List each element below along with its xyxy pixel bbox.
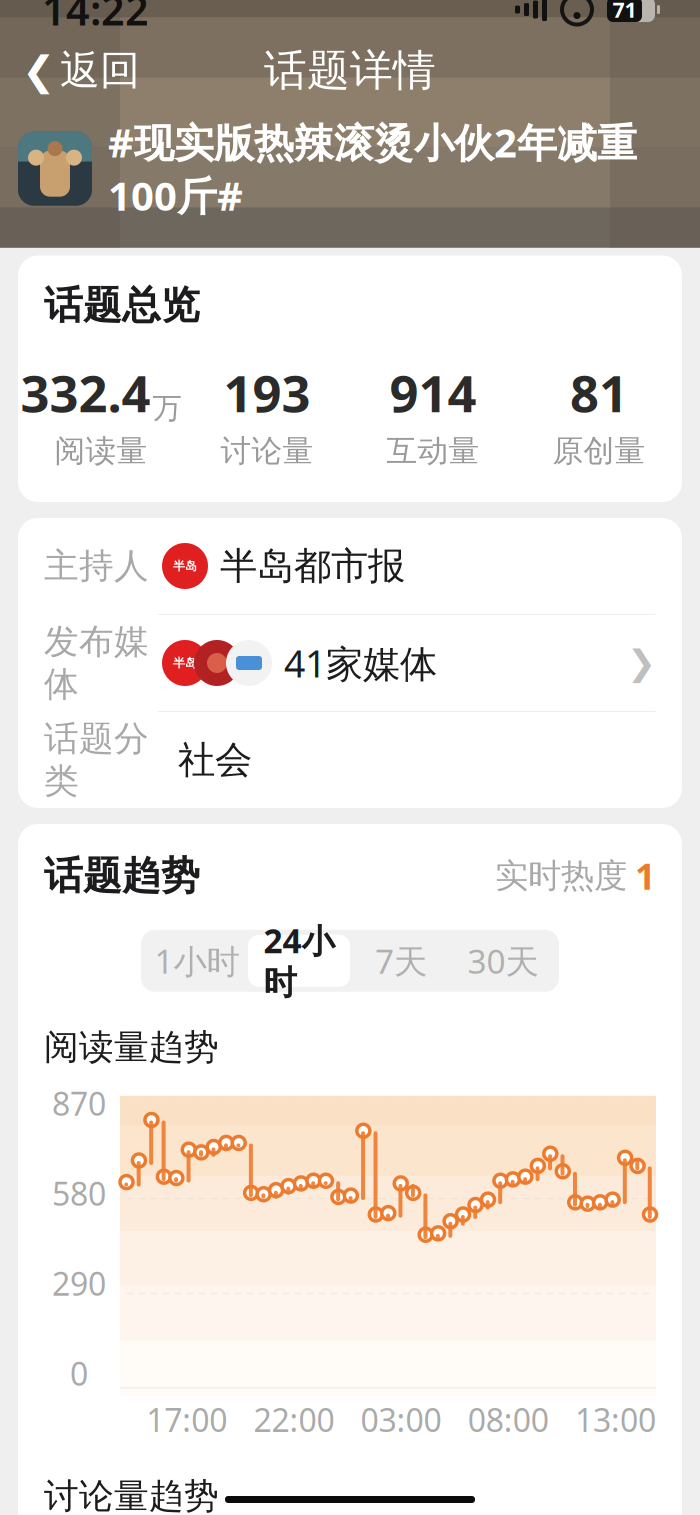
staticText: 81 [570,359,628,426]
staticText: 话题详情 [264,44,436,97]
staticText: 22:00 [253,1398,334,1441]
staticText: 24小时 [263,918,334,1003]
staticText: 讨论量 [220,432,313,470]
staticText: 1小时 [154,939,239,983]
staticText: 870 [52,1082,106,1125]
staticText: #现实版热辣滚烫小伙2年减重100斤# [108,115,637,222]
staticText: 主持人 [44,545,149,587]
button[interactable]: ❮ [4,36,158,105]
staticText: 30天 [467,939,538,983]
staticText: 41家媒体 [284,638,437,688]
staticText: 03:00 [361,1398,442,1441]
staticText: 17:00 [146,1398,227,1441]
button[interactable]: 7天 [350,935,452,987]
staticText: 914 [389,359,476,426]
staticText: 半岛都市报 [220,543,405,589]
staticText: 返回 [60,46,140,95]
staticText: 1 [635,852,656,900]
staticText: 实时热度 [495,855,627,896]
staticText: 290 [52,1262,106,1305]
staticText: 发布媒体 [44,620,149,706]
staticText: 193 [223,359,310,426]
staticText: 话题分类 [44,717,149,803]
staticText: 71 [612,0,636,24]
staticText: 话题趋势 [44,852,200,900]
staticText: 话题总览 [44,281,200,329]
staticText: 阅读量趋势 [44,1026,219,1068]
staticText: 万 [152,390,181,426]
staticText: 阅读量 [54,432,147,470]
staticText: 原创量 [552,432,645,470]
staticText: ❮ [22,48,56,93]
staticText: 7天 [375,939,427,983]
staticText: 580 [52,1172,106,1215]
staticText: 互动量 [386,432,479,470]
staticText: 0 [70,1352,88,1395]
staticText: 半岛 [173,656,197,670]
staticText: 08:00 [468,1398,549,1441]
staticText: 14:22 [42,0,149,37]
button[interactable]: 24小时 [248,935,350,987]
button[interactable]: 30天 [452,935,554,987]
staticText: 332.4 [20,359,150,426]
button[interactable]: 1小时 [146,935,248,987]
staticText: 半岛 [173,559,197,573]
staticText: ❯ [627,643,656,683]
staticText: 13:00 [575,1398,656,1441]
button[interactable]: 发布媒体 [18,615,682,711]
staticText: 社会 [178,737,252,783]
staticText: 讨论量趋势 [44,1475,219,1515]
